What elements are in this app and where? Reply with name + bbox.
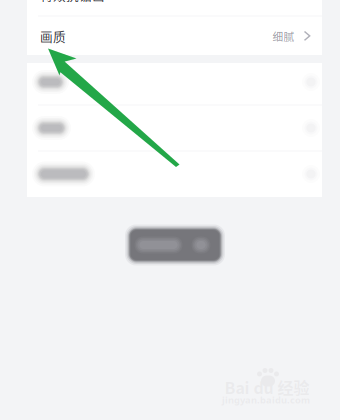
staticText: 细腻 [272, 28, 294, 44]
staticText: 画质 [40, 27, 66, 45]
button[interactable]: 画质 [40, 17, 322, 55]
button[interactable]: Setting [32, 106, 322, 150]
button[interactable]: 特效抗锯齿 [40, 0, 322, 4]
staticText: 特效抗锯齿 [40, 0, 105, 4]
staticText: jingyan.baidu.com [222, 394, 310, 406]
button[interactable]: Toast message [125, 224, 225, 265]
staticText: Bai du 经验 [224, 375, 309, 399]
button[interactable]: Setting [32, 152, 322, 196]
button[interactable]: Setting [32, 60, 322, 104]
